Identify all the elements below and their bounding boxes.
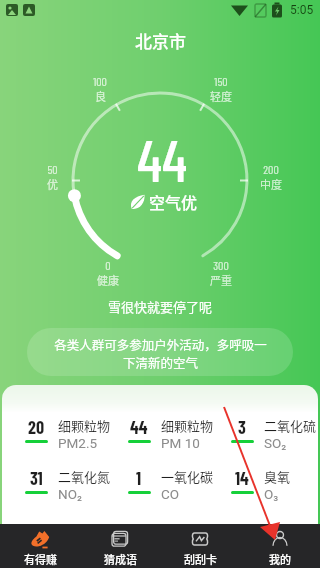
staticText: O₃ xyxy=(264,486,279,502)
staticText: 0 xyxy=(105,258,111,272)
staticText: 20 xyxy=(28,416,45,438)
other: 有得赚 xyxy=(30,529,50,549)
staticText: 细颗粒物 xyxy=(58,416,111,435)
staticText: 200 xyxy=(263,162,279,176)
button[interactable]: 44 xyxy=(125,416,228,451)
staticText: 300 xyxy=(213,258,229,272)
staticText: 健康 xyxy=(97,272,119,288)
button[interactable]: 3 xyxy=(228,416,318,451)
button[interactable]: 猜成语 xyxy=(80,524,160,568)
staticText: 二氧化硫 xyxy=(264,416,317,435)
staticText: 有得赚 xyxy=(24,551,57,567)
staticText: 刮刮卡 xyxy=(184,551,217,567)
staticText: 1 xyxy=(136,467,142,489)
staticText: 猜成语 xyxy=(104,551,137,567)
other: 刮刮卡 xyxy=(190,529,210,549)
staticText: 100 xyxy=(93,74,107,88)
staticText: 北京市 xyxy=(135,28,186,53)
button[interactable]: 20 xyxy=(22,416,125,451)
button[interactable]: 各类人群可多参加户外活动，多呼吸一 下清新的空气 xyxy=(27,328,293,376)
staticText: 良 xyxy=(95,88,106,104)
staticText: 严重 xyxy=(210,272,232,288)
other: Pointer xyxy=(0,0,320,568)
staticText: 44 xyxy=(130,416,148,438)
staticText: 臭氧 xyxy=(264,467,291,486)
staticText: 50 xyxy=(47,162,58,176)
staticText: 一氧化碳 xyxy=(161,467,214,486)
staticText: SO₂ xyxy=(264,435,287,451)
other: 猜成语 xyxy=(110,529,130,549)
staticText: 150 xyxy=(214,74,228,88)
staticText: CO xyxy=(161,486,180,502)
staticText: 5:05 xyxy=(290,3,314,17)
staticText: 优 xyxy=(47,176,58,192)
staticText: 我的 xyxy=(269,551,291,567)
staticText: 细颗粒物 xyxy=(161,416,214,435)
other: 我的 xyxy=(270,529,290,549)
staticText: 中度 xyxy=(260,176,282,192)
staticText: 各类人群可多参加户外活动，多呼吸一 下清新的空气 xyxy=(54,335,267,372)
button[interactable]: 31 xyxy=(22,467,125,502)
button[interactable]: 有得赚 xyxy=(0,524,80,568)
button[interactable]: 刮刮卡 xyxy=(160,524,240,568)
staticText: 二氧化氮 xyxy=(58,467,111,486)
staticText: PM 10 xyxy=(161,435,200,451)
staticText: NO₂ xyxy=(58,486,82,502)
staticText: PM2.5 xyxy=(58,435,98,451)
staticText: 轻度 xyxy=(210,88,232,104)
button[interactable]: 我的 xyxy=(240,524,320,568)
staticText: 31 xyxy=(30,467,43,489)
staticText: 雪很快就要停了呢 xyxy=(108,297,213,316)
staticText: 空气优 xyxy=(149,190,198,213)
button[interactable]: 14 xyxy=(228,467,318,502)
staticText: 3 xyxy=(238,416,246,438)
staticText: 14 xyxy=(235,467,249,489)
button[interactable]: 1 xyxy=(125,467,228,502)
staticText: 44 xyxy=(137,125,188,193)
